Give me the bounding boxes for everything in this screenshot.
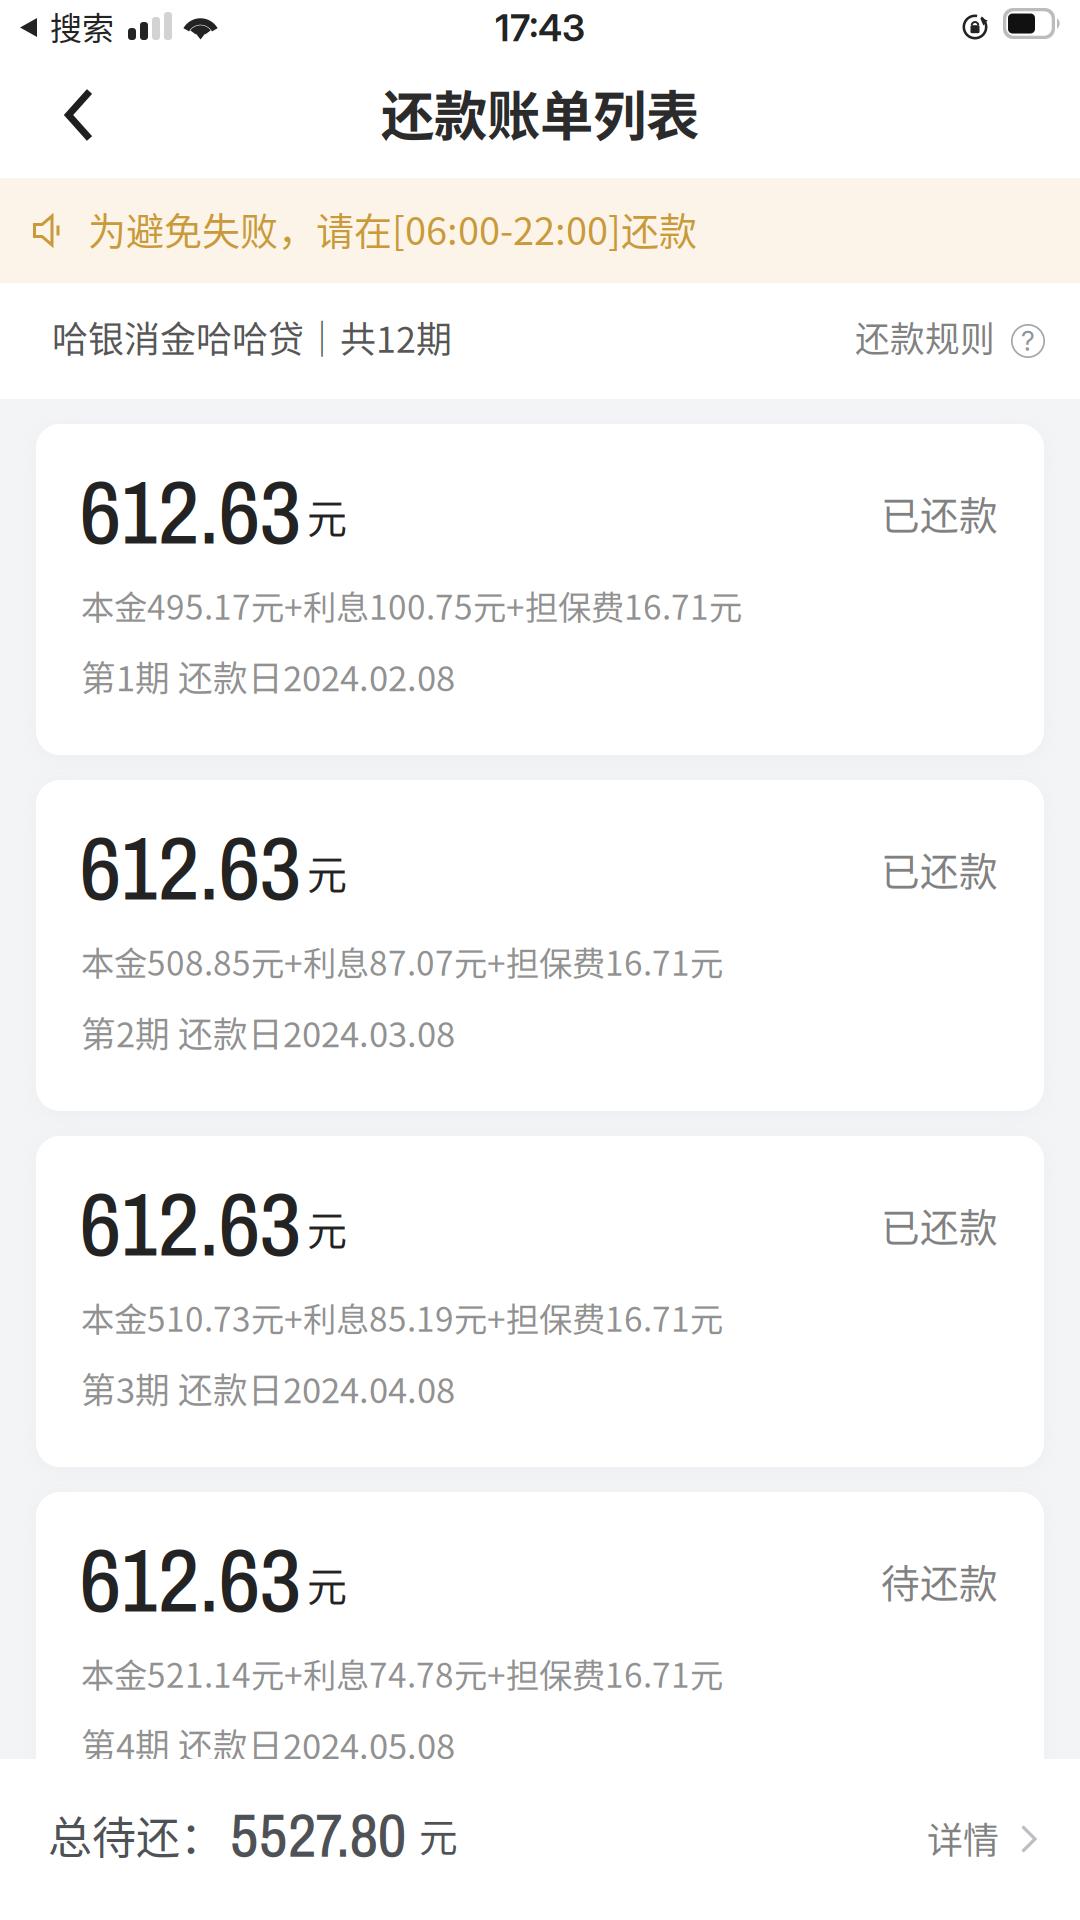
staticText: 已还款 — [881, 841, 998, 897]
staticText: 已还款 — [881, 485, 998, 541]
button[interactable]: 612.63 — [36, 424, 1044, 755]
staticText: 元 — [419, 1807, 458, 1863]
staticText: 元 — [307, 843, 347, 901]
staticText: 元 — [307, 487, 347, 545]
staticText: 612.63 — [80, 465, 301, 562]
staticText: 为避免失败，请在[06:00-22:00]还款 — [88, 201, 697, 256]
staticText: 5527.80 — [230, 1803, 406, 1870]
staticText: 612.63 — [80, 1177, 301, 1274]
staticText: 第3期 还款日2024.04.08 — [81, 1363, 455, 1413]
staticText: 本金508.85元+利息87.07元+担保费16.71元 — [81, 937, 723, 985]
button[interactable]: 详情 — [924, 1796, 1074, 1886]
button[interactable]: 612.63 — [36, 1492, 1044, 1823]
button[interactable]: 612.63 — [36, 780, 1044, 1111]
staticText: 612.63 — [80, 1533, 301, 1630]
staticText: 哈银消金哈哈贷｜共12期 — [52, 311, 452, 363]
button[interactable]: 返回 — [0, 56, 120, 178]
button[interactable]: 还款规则 — [855, 316, 1045, 366]
staticText: 612.63 — [80, 821, 301, 918]
staticText: 本金495.17元+利息100.75元+担保费16.71元 — [81, 581, 742, 629]
staticText: 详情 — [927, 1812, 999, 1864]
button[interactable]: 612.63 — [36, 1136, 1044, 1467]
staticText: 第2期 还款日2024.03.08 — [81, 1007, 455, 1057]
staticText: 元 — [307, 1555, 347, 1613]
staticText: 本金510.73元+利息85.19元+担保费16.71元 — [81, 1293, 723, 1341]
staticText: 待还款 — [881, 1553, 998, 1609]
staticText: 第4期 还款日2024.05.08 — [81, 1719, 455, 1769]
staticText: 总待还： — [48, 1803, 224, 1867]
staticText: 本金521.14元+利息74.78元+担保费16.71元 — [81, 1649, 723, 1697]
staticText: 第1期 还款日2024.02.08 — [81, 651, 455, 701]
staticText: 搜索 — [50, 3, 114, 49]
staticText: 17:43 — [495, 5, 585, 50]
staticText: ? — [1021, 325, 1035, 357]
staticText: 元 — [307, 1199, 347, 1257]
staticText: 已还款 — [881, 1197, 998, 1253]
staticText: 还款规则 — [855, 312, 995, 362]
staticText: 还款账单列表 — [381, 74, 699, 151]
